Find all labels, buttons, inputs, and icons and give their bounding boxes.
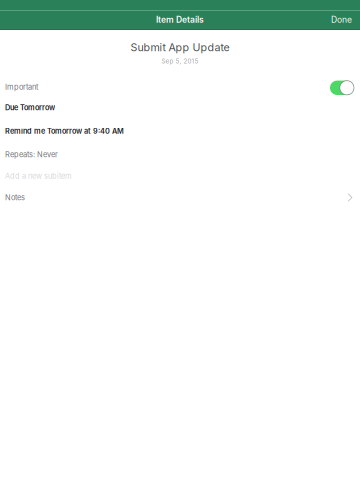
staticText: Due Tomorrow	[5, 103, 55, 112]
staticText: Remind me Tomorrow at 9:40 AM	[5, 127, 124, 136]
button[interactable]: Due Tomorrow	[0, 97, 360, 119]
staticText: Sep 5, 2015	[161, 57, 198, 65]
staticText: Important	[5, 82, 38, 91]
button[interactable]: Notes	[0, 187, 360, 208]
button[interactable]: Add a new subitem	[0, 165, 360, 187]
button[interactable]: Done	[319, 9, 360, 30]
staticText: Add a new subitem	[5, 172, 72, 181]
button[interactable]: Repeats: Never	[0, 144, 360, 165]
button[interactable]: Remind me Tomorrow at 9:40 AM	[0, 119, 360, 144]
staticText: Submit App Update	[130, 41, 229, 54]
staticText: Notes	[5, 193, 25, 202]
button[interactable]: Important	[0, 76, 360, 97]
staticText: Done	[331, 14, 352, 25]
staticText: Repeats: Never	[5, 150, 58, 159]
staticText: Item Details	[156, 14, 204, 25]
